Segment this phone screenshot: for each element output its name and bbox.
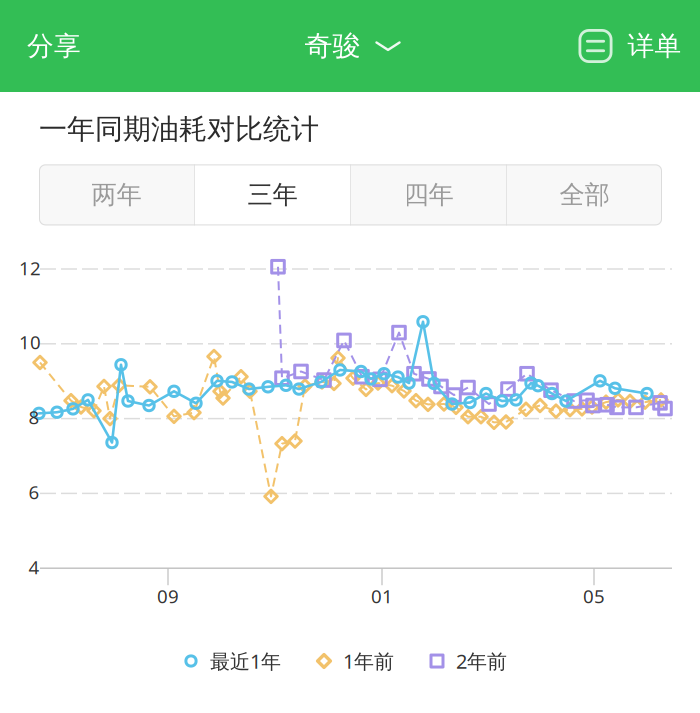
staticText: 6 (28, 480, 39, 504)
button[interactable]: 四年 (351, 164, 506, 225)
button[interactable]: 三年 (195, 164, 350, 225)
staticText: 全部 (559, 179, 609, 210)
staticText: 详单 (627, 30, 681, 62)
staticText: 05 (583, 584, 605, 608)
staticText: 三年 (247, 179, 297, 210)
staticText: 两年 (91, 179, 141, 210)
button[interactable]: 详单 (562, 0, 697, 92)
button[interactable]: 两年 (39, 164, 194, 225)
staticText: 10 (19, 330, 41, 354)
staticText: 1年前 (343, 648, 394, 674)
staticText: 2年前 (456, 648, 507, 674)
staticText: 8 (28, 405, 39, 429)
staticText: 12 (19, 256, 41, 280)
staticText: 最近1年 (210, 648, 281, 674)
staticText: 01 (371, 584, 393, 608)
staticText: 09 (157, 584, 179, 608)
button[interactable]: 分享 (6, 0, 102, 92)
staticText: 4 (28, 555, 39, 579)
staticText: 四年 (403, 179, 453, 210)
staticText: 奇骏 (304, 29, 360, 63)
staticText: 分享 (27, 30, 81, 62)
button[interactable]: 全部 (507, 164, 662, 225)
button[interactable]: 奇骏 (304, 0, 399, 92)
staticText: 一年同期油耗对比统计 (39, 112, 319, 146)
